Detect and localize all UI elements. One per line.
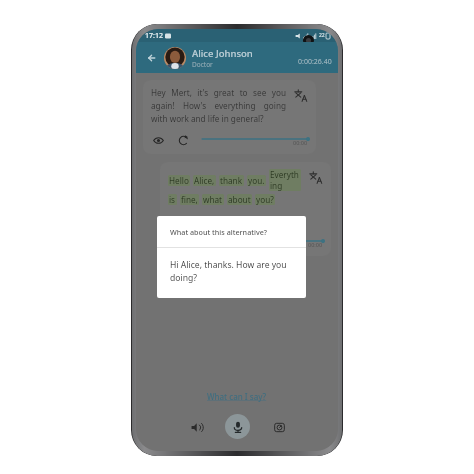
- button[interactable]: Speaker: [185, 416, 207, 438]
- staticText: What can I say?: [207, 391, 267, 402]
- button[interactable]: Back: [142, 48, 162, 68]
- button[interactable]: Replay: [193, 235, 207, 249]
- button[interactable]: What can I say?: [201, 388, 273, 405]
- staticText: about: [228, 194, 251, 205]
- staticText: Hey Mert, it's great to see you again! H…: [151, 87, 286, 125]
- button[interactable]: Translate: [307, 169, 323, 185]
- staticText: Alice,: [194, 175, 215, 186]
- button[interactable]: Hello: [160, 162, 331, 256]
- staticText: what: [203, 194, 223, 205]
- staticText: 00:00: [293, 139, 308, 146]
- staticText: Everything: [270, 169, 300, 191]
- staticText: 22: [319, 32, 325, 39]
- button[interactable]: Speed: [268, 416, 290, 438]
- staticText: 00:00: [308, 241, 323, 248]
- staticText: thank: [220, 175, 243, 186]
- button[interactable]: Show text: [151, 133, 165, 147]
- staticText: Hello: [169, 175, 189, 186]
- staticText: Alice Johnson: [192, 47, 253, 60]
- staticText: Hi Alice, thanks. How are you doing?: [170, 259, 288, 284]
- button[interactable]: Translate: [292, 87, 308, 103]
- button[interactable]: Show text: [168, 235, 182, 249]
- staticText: is: [169, 194, 176, 205]
- staticText: fine,: [181, 194, 198, 205]
- staticText: What about this alternative?: [170, 227, 268, 237]
- staticText: you?: [256, 194, 274, 205]
- button[interactable]: Replay: [176, 133, 190, 147]
- staticText: you.: [248, 175, 265, 186]
- button[interactable]: What about this alternative?: [157, 216, 306, 298]
- button[interactable]: Hey Mert, it's great to see you again! H…: [143, 80, 316, 154]
- staticText: 17:12: [145, 31, 163, 41]
- staticText: Doctor: [192, 60, 213, 69]
- staticText: 0:00:26.40: [298, 57, 332, 67]
- button[interactable]: Microphone: [225, 414, 250, 439]
